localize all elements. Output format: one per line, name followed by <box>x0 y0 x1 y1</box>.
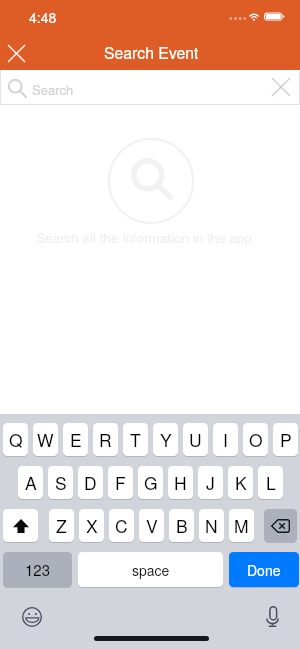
staticText: U <box>189 427 202 452</box>
button[interactable]: D <box>78 466 103 499</box>
staticText: R <box>99 427 112 452</box>
button[interactable]: S <box>48 466 73 499</box>
button[interactable]: space <box>78 552 223 587</box>
button[interactable]: L <box>258 466 283 499</box>
staticText: Z <box>56 513 67 538</box>
staticText: Search Event <box>104 41 199 64</box>
button[interactable]: Clear search <box>267 73 295 101</box>
button[interactable]: P <box>273 423 298 456</box>
button[interactable]: G <box>138 466 163 499</box>
staticText: F <box>115 470 126 495</box>
staticText: V <box>146 513 158 538</box>
staticText: J <box>206 470 215 495</box>
button[interactable]: Done <box>229 552 299 587</box>
staticText: 123 <box>25 559 51 580</box>
button[interactable]: Y <box>153 423 178 456</box>
button[interactable]: M <box>229 509 254 542</box>
button[interactable]: Voice input <box>257 601 288 632</box>
staticText: Search all the information in the app <box>36 228 252 247</box>
staticText: E <box>70 427 82 452</box>
button[interactable]: X <box>79 509 104 542</box>
staticText: S <box>55 470 67 495</box>
button[interactable]: F <box>108 466 133 499</box>
button[interactable]: A <box>18 466 43 499</box>
button[interactable]: K <box>228 466 253 499</box>
button[interactable]: 123 <box>3 552 72 587</box>
button[interactable]: U <box>183 423 208 456</box>
button[interactable]: Close <box>3 40 30 67</box>
staticText: O <box>249 427 263 452</box>
button[interactable]: Search <box>1 70 299 104</box>
button[interactable]: J <box>198 466 223 499</box>
button[interactable]: R <box>93 423 118 456</box>
other: Backspace <box>264 509 297 543</box>
staticText: I <box>223 427 228 452</box>
button[interactable]: W <box>33 423 58 456</box>
other: Shift <box>3 509 38 543</box>
button[interactable]: B <box>169 509 194 542</box>
button[interactable] <box>3 509 38 542</box>
staticText: Y <box>160 427 172 452</box>
button[interactable]: N <box>199 509 224 542</box>
button[interactable]: T <box>123 423 148 456</box>
staticText: T <box>130 427 141 452</box>
button[interactable] <box>264 509 297 542</box>
button[interactable]: Emoji keyboard <box>16 601 47 632</box>
staticText: Q <box>9 427 23 452</box>
staticText: C <box>115 513 128 538</box>
staticText: N <box>205 513 218 538</box>
staticText: 4:48 <box>29 7 57 27</box>
staticText: Search <box>32 80 74 99</box>
staticText: K <box>235 470 247 495</box>
staticText: space <box>132 560 170 580</box>
staticText: A <box>25 470 37 495</box>
staticText: H <box>174 470 187 495</box>
staticText: G <box>144 470 158 495</box>
button[interactable]: E <box>63 423 88 456</box>
button[interactable]: C <box>109 509 134 542</box>
staticText: W <box>37 427 54 452</box>
button[interactable]: Q <box>3 423 28 456</box>
button[interactable]: H <box>168 466 193 499</box>
button[interactable]: Z <box>49 509 74 542</box>
staticText: D <box>84 470 97 495</box>
staticText: L <box>266 470 276 495</box>
staticText: B <box>176 513 188 538</box>
staticText: P <box>280 427 292 452</box>
button[interactable]: V <box>139 509 164 542</box>
staticText: X <box>86 513 98 538</box>
button[interactable]: I <box>213 423 238 456</box>
button[interactable]: O <box>243 423 268 456</box>
staticText: M <box>234 513 249 538</box>
staticText: Done <box>247 560 281 580</box>
